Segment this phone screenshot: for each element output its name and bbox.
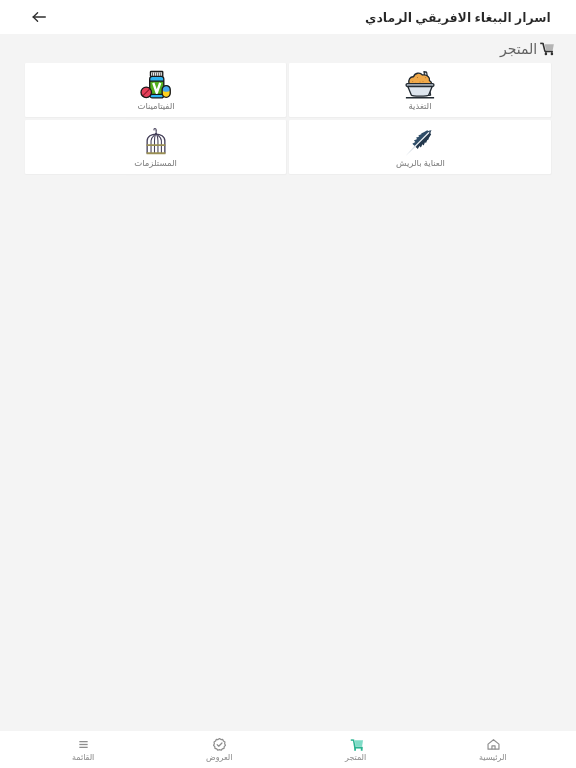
staticText: القائمة [72, 753, 95, 762]
button[interactable]: القائمة [15, 731, 151, 768]
button[interactable]: العروض [151, 731, 287, 768]
button[interactable]: Back [26, 4, 52, 30]
staticText: العروض [206, 753, 233, 762]
staticText: العناية بالريش [396, 157, 445, 169]
staticText: التغذية [408, 101, 432, 111]
button[interactable]: الفيتامينات [25, 63, 286, 117]
staticText: الفيتامينات [137, 101, 175, 111]
button[interactable]: المستلزمات [25, 120, 286, 174]
staticText: المتجر [345, 753, 367, 762]
button[interactable]: الرئيسية [424, 731, 561, 768]
button[interactable]: التغذية [289, 63, 551, 117]
button[interactable]: العناية بالريش [289, 120, 551, 174]
staticText: اسرار الببغاء الافريقي الرمادي [365, 9, 551, 26]
button[interactable]: المتجر [287, 731, 424, 768]
button[interactable]: المتجر [500, 34, 576, 63]
staticText: المستلزمات [134, 158, 177, 168]
staticText: الرئيسية [479, 753, 507, 762]
staticText: المتجر [500, 41, 538, 57]
